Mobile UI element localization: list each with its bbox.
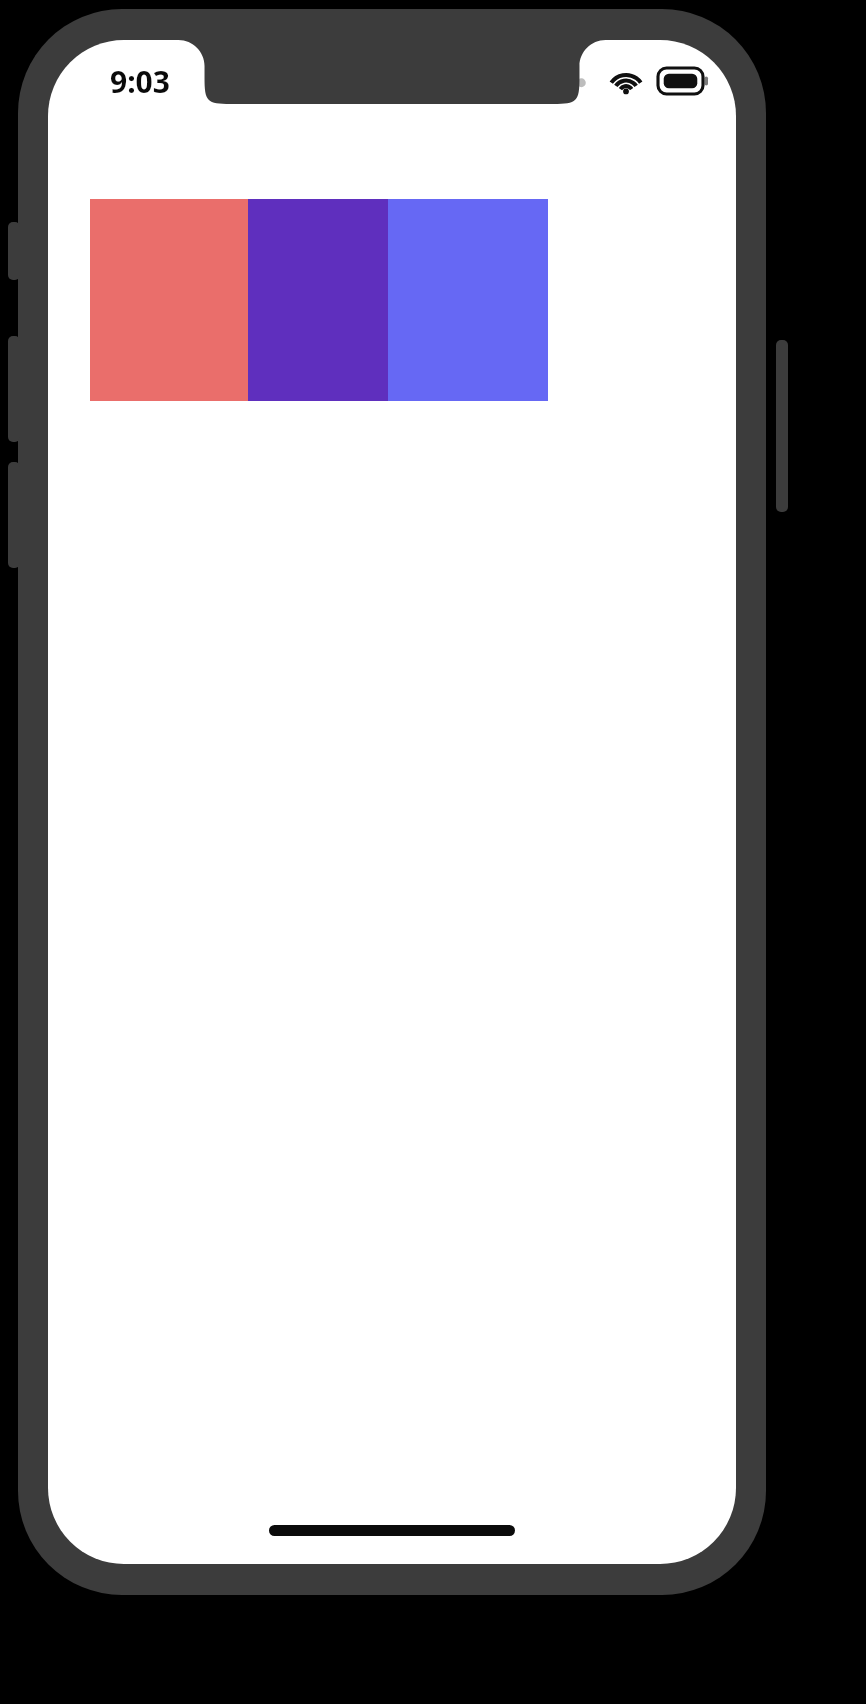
staticText: 9:03 xyxy=(110,61,170,102)
